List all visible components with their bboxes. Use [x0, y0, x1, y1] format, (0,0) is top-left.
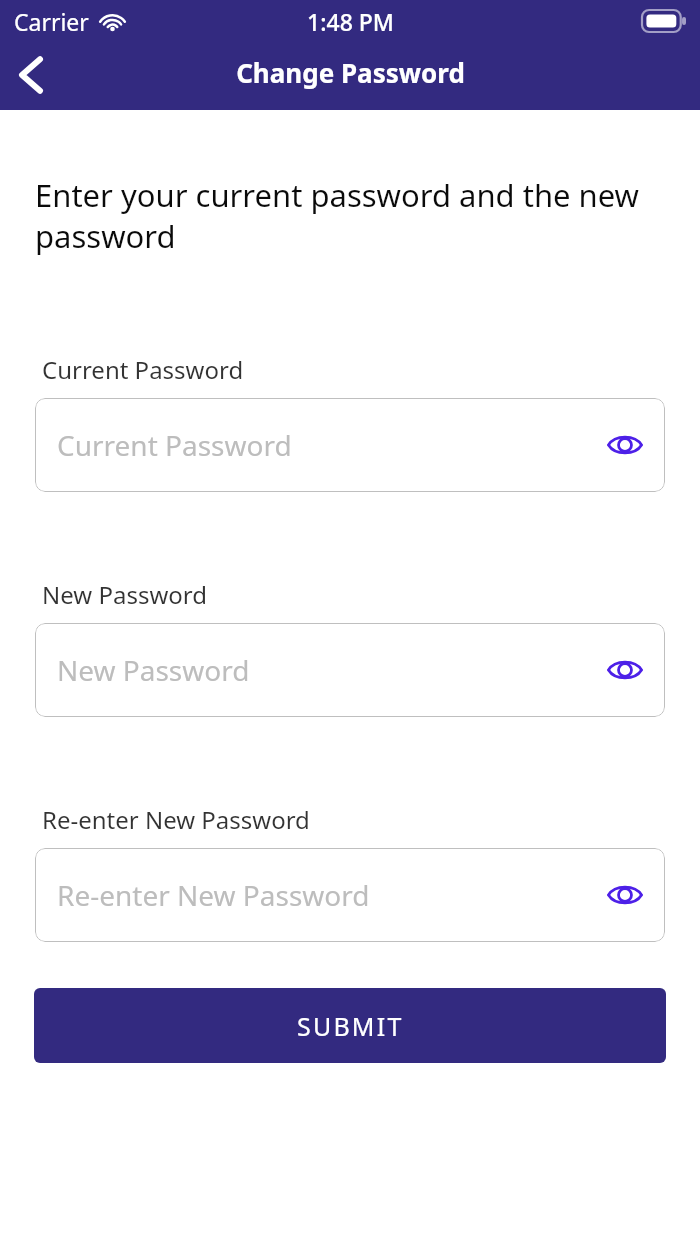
- staticText: New Password: [42, 578, 207, 611]
- staticText: Re-enter New Password: [42, 803, 310, 836]
- button[interactable]: Back: [2, 46, 60, 104]
- button[interactable]: Show password: [597, 642, 653, 698]
- button[interactable]: New Password: [35, 623, 665, 717]
- staticText: Enter your current password and the new …: [35, 174, 652, 257]
- staticText: SUBMIT: [297, 1009, 404, 1043]
- staticText: Carrier: [14, 6, 89, 37]
- staticText: Current Password: [42, 353, 244, 386]
- button[interactable]: SUBMIT: [34, 988, 666, 1063]
- staticText: Current Password: [57, 426, 292, 464]
- button[interactable]: Current Password: [35, 398, 665, 492]
- staticText: Re-enter New Password: [57, 876, 370, 914]
- staticText: New Password: [57, 651, 250, 689]
- staticText: Change Password: [236, 55, 465, 90]
- staticText: 1:48 PM: [307, 6, 394, 37]
- button[interactable]: Show password: [597, 867, 653, 923]
- button[interactable]: Show password: [597, 417, 653, 473]
- button[interactable]: Re-enter New Password: [35, 848, 665, 942]
